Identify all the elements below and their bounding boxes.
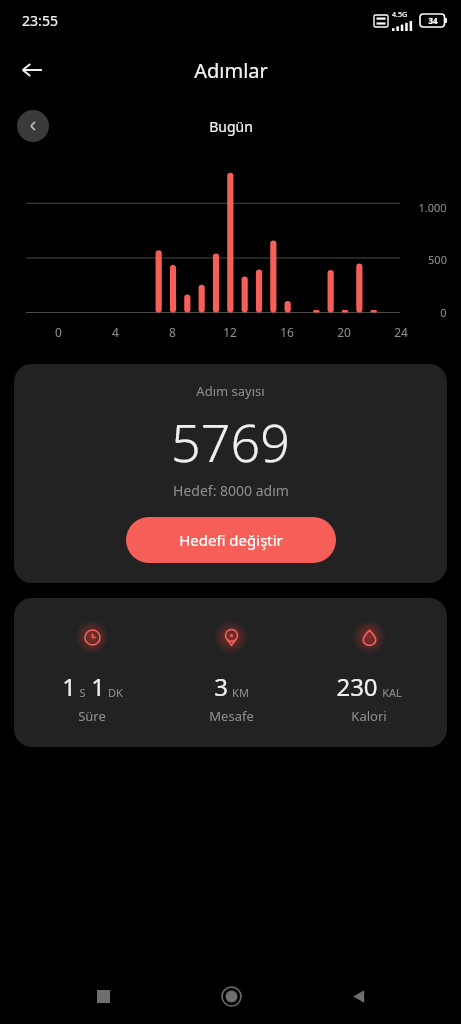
button[interactable]: Calories bbox=[309, 620, 429, 725]
staticText: 8 bbox=[169, 324, 176, 340]
staticText: 230 bbox=[336, 670, 378, 703]
staticText: DK bbox=[108, 685, 123, 700]
staticText: 12 bbox=[223, 324, 237, 340]
staticText: KAL bbox=[382, 685, 402, 700]
staticText: Hedefi değiştir bbox=[179, 530, 283, 550]
staticText: Adımlar bbox=[194, 57, 268, 84]
staticText: 20 bbox=[337, 324, 351, 340]
staticText: 24 bbox=[394, 324, 408, 340]
staticText: 1 bbox=[91, 670, 105, 703]
button[interactable]: Back bbox=[334, 972, 382, 1020]
other: Duration bbox=[84, 629, 101, 646]
staticText: Bugün bbox=[209, 117, 253, 136]
staticText: 23:55 bbox=[22, 11, 58, 30]
staticText: S bbox=[79, 685, 86, 700]
staticText: 0 bbox=[55, 324, 62, 340]
button[interactable]: Hedefi değiştir bbox=[126, 517, 336, 563]
other: Distance bbox=[223, 629, 240, 646]
staticText: Hedef: 8000 adım bbox=[173, 481, 289, 500]
staticText: 16 bbox=[280, 324, 294, 340]
staticText: Adım sayısı bbox=[196, 382, 265, 400]
staticText: 4.5G bbox=[392, 10, 407, 20]
button[interactable]: Previous day bbox=[17, 110, 49, 142]
staticText: Kalori bbox=[351, 707, 387, 725]
button[interactable]: Back bbox=[8, 46, 56, 94]
staticText: 5769 bbox=[171, 406, 290, 477]
button[interactable]: Duration bbox=[14, 598, 447, 747]
button[interactable]: Distance bbox=[171, 620, 291, 725]
staticText: 1.000 bbox=[418, 200, 447, 215]
button[interactable]: Home bbox=[207, 972, 255, 1020]
button[interactable]: Adım sayısı bbox=[14, 364, 447, 583]
staticText: 500 bbox=[428, 252, 447, 267]
staticText: KM bbox=[232, 685, 249, 700]
staticText: Süre bbox=[78, 707, 106, 725]
staticText: 34 bbox=[428, 15, 438, 26]
staticText: 1 bbox=[62, 670, 76, 703]
other: Calories bbox=[361, 629, 378, 646]
button[interactable]: Duration bbox=[32, 620, 152, 725]
staticText: Mesafe bbox=[209, 707, 254, 725]
staticText: 0 bbox=[440, 305, 447, 320]
button[interactable]: Recent apps bbox=[79, 972, 127, 1020]
staticText: 3 bbox=[214, 670, 228, 703]
staticText: 4 bbox=[112, 324, 119, 340]
